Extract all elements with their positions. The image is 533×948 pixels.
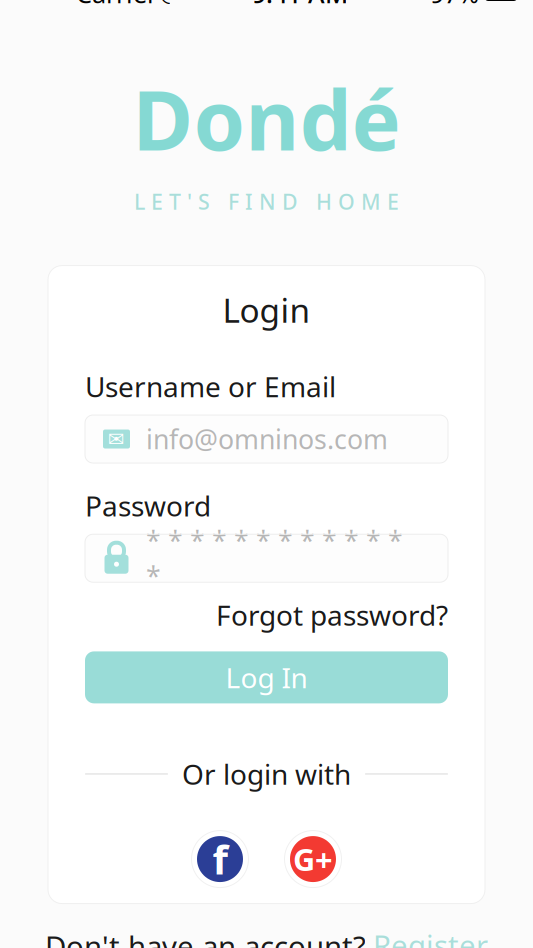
staticText: Register — [373, 926, 488, 948]
staticText: G+ — [293, 839, 333, 879]
staticText: 97% — [430, 0, 479, 10]
staticText: Login — [222, 288, 310, 332]
staticText: Dondé — [132, 63, 400, 173]
staticText: L E T ' S F I N D H O M E — [134, 187, 399, 215]
staticText: f — [212, 832, 227, 886]
staticText: Log In — [225, 659, 307, 696]
staticText: Or login with — [182, 755, 351, 793]
button[interactable]: Log in with Google Plus — [284, 831, 341, 888]
staticText: 9:41 AM — [252, 0, 348, 10]
staticText: Username or Email — [85, 368, 336, 405]
staticText: Password — [85, 487, 211, 524]
button[interactable]: Register — [373, 926, 488, 948]
staticText: ◟ — [161, 0, 170, 6]
staticText: Carrier — [76, 0, 157, 10]
button[interactable]: Log in with Facebook — [191, 831, 248, 888]
staticText: ✉ — [108, 428, 125, 450]
staticText: info@omninos.com — [146, 421, 388, 457]
staticText: Forgot password? — [216, 596, 448, 633]
button[interactable]: Forgot password? — [85, 596, 448, 633]
staticText: * * * * * * * * * * * * * — [146, 523, 403, 594]
staticText: Don't have an account? — [45, 927, 366, 948]
button[interactable]: Log In — [85, 651, 448, 703]
